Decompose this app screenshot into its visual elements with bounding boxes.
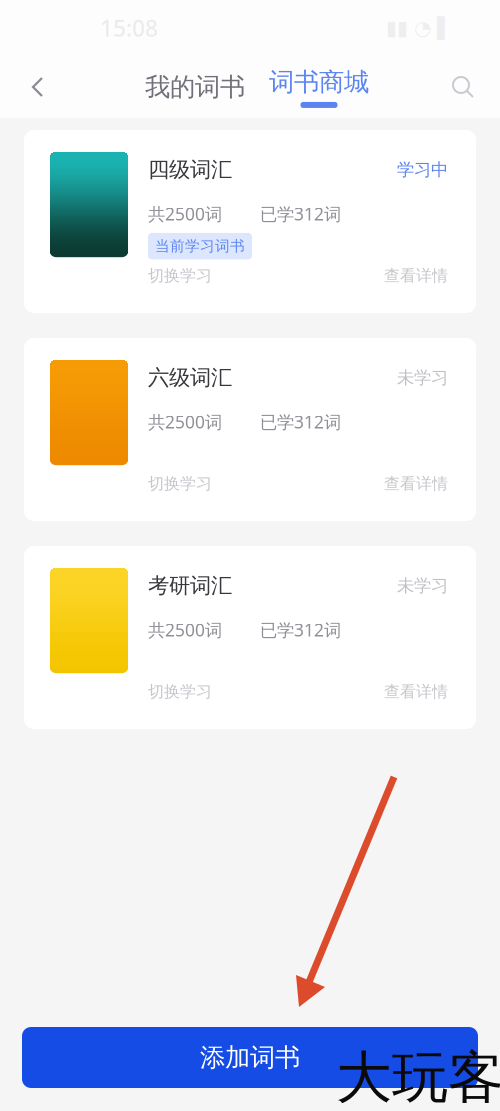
staticText: 我的词书 <box>145 71 245 103</box>
button[interactable]: 词书商城 <box>269 66 369 108</box>
staticText: 切换学习 <box>148 682 212 702</box>
staticText: 当前学习词书 <box>155 237 245 255</box>
staticText: 15:08 <box>100 13 158 43</box>
staticText: 查看详情 <box>384 266 448 286</box>
staticText: 考研词汇 <box>148 572 232 599</box>
staticText: 四级词汇 <box>148 156 232 183</box>
staticText: 学习中 <box>397 159 448 180</box>
staticText: 切换学习 <box>148 474 212 494</box>
staticText: 已学312词 <box>260 618 341 642</box>
staticText: 共2500词 <box>148 410 222 434</box>
staticText: 已学312词 <box>260 202 341 226</box>
staticText: 共2500词 <box>148 618 222 642</box>
staticText: 未学习 <box>397 367 448 388</box>
staticText: 未学习 <box>397 575 448 596</box>
staticText: 共2500词 <box>148 202 222 226</box>
staticText: 已学312词 <box>260 410 341 434</box>
button[interactable]: 添加词书 <box>22 1027 478 1088</box>
button[interactable]: 六级词汇 <box>0 338 500 521</box>
button[interactable]: Back <box>17 65 61 109</box>
staticText: 查看详情 <box>384 474 448 494</box>
staticText: 六级词汇 <box>148 364 232 391</box>
staticText: 切换学习 <box>148 266 212 286</box>
staticText: 查看详情 <box>384 682 448 702</box>
staticText: 词书商城 <box>269 66 369 98</box>
button[interactable]: 考研词汇 <box>0 546 500 729</box>
button[interactable]: 四级词汇 <box>0 130 500 313</box>
button[interactable]: Search <box>443 67 483 107</box>
staticText: 大玩客 <box>336 1042 500 1111</box>
staticText: 添加词书 <box>200 1041 300 1073</box>
button[interactable]: 我的词书 <box>145 64 245 110</box>
staticText: ▮▮ ◔ ▌ <box>386 16 452 40</box>
